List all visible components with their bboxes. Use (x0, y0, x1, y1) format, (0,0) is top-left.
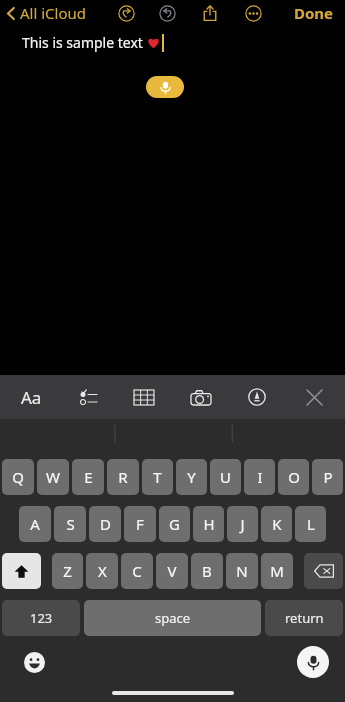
button[interactable]: Markup (236, 377, 278, 417)
staticText: J (240, 514, 245, 534)
button[interactable]: X (86, 553, 118, 589)
staticText: X (98, 561, 107, 581)
button[interactable]: All iCloud (4, 1, 89, 25)
button[interactable]: U (210, 459, 241, 495)
button[interactable]: M (261, 553, 293, 589)
button[interactable]: Table (123, 377, 165, 417)
staticText: S (66, 514, 75, 534)
button[interactable]: K (261, 506, 292, 542)
staticText: V (167, 561, 177, 581)
staticText: Z (63, 561, 72, 581)
button[interactable]: L (295, 506, 326, 542)
staticText: Q (12, 467, 24, 487)
staticText: M (270, 561, 284, 581)
button[interactable]: Hide keyboard (293, 377, 335, 417)
staticText: O (288, 467, 300, 487)
button[interactable]: W (37, 459, 69, 495)
button[interactable]: Shift (2, 553, 41, 589)
staticText: Done (294, 3, 334, 23)
staticText: 123 (30, 609, 53, 627)
button[interactable]: D (89, 506, 121, 542)
button[interactable]: Start dictation (146, 76, 184, 98)
button[interactable]: F (124, 506, 156, 542)
button[interactable]: R (107, 459, 139, 495)
staticText: I (257, 467, 263, 487)
staticText: return (285, 609, 324, 627)
button[interactable]: return (265, 600, 343, 636)
staticText: G (169, 514, 180, 534)
button[interactable]: More options (241, 1, 265, 25)
button[interactable]: B (191, 553, 223, 589)
button[interactable]: V (156, 553, 188, 589)
staticText: R (118, 467, 128, 487)
staticText: P (323, 467, 333, 487)
button[interactable]: H (193, 506, 224, 542)
button[interactable]: Checklist (67, 377, 109, 417)
staticText: Aa (21, 386, 42, 409)
staticText: Y (187, 467, 196, 487)
staticText: T (153, 467, 162, 487)
button[interactable]: Format (10, 377, 52, 417)
button[interactable]: S (54, 506, 86, 542)
button[interactable]: Camera (180, 377, 222, 417)
staticText: F (136, 514, 144, 534)
button[interactable]: A (19, 506, 51, 542)
button[interactable]: Emoji keyboard (20, 648, 48, 676)
staticText: D (100, 514, 111, 534)
button[interactable]: Done (289, 1, 339, 25)
button[interactable]: Undo (114, 1, 138, 25)
staticText: U (220, 467, 231, 487)
staticText: L (307, 514, 315, 534)
button[interactable]: P (312, 459, 343, 495)
staticText: space (155, 609, 191, 627)
button[interactable]: J (227, 506, 258, 542)
button[interactable]: space (84, 600, 261, 636)
button[interactable]: Y (176, 459, 207, 495)
staticText: N (236, 561, 248, 581)
staticText: All iCloud (20, 3, 87, 23)
staticText: H (203, 514, 215, 534)
button[interactable]: Q (2, 459, 34, 495)
button[interactable]: Redo (155, 1, 179, 25)
button[interactable]: Backspace (304, 553, 343, 589)
button[interactable]: Dictate (297, 646, 329, 678)
button[interactable]: I (244, 459, 275, 495)
staticText: This is sample text (22, 33, 147, 52)
button[interactable]: N (226, 553, 258, 589)
button[interactable]: C (121, 553, 153, 589)
staticText: E (84, 467, 93, 487)
button[interactable]: E (72, 459, 104, 495)
staticText: K (272, 514, 282, 534)
button[interactable]: Share (198, 1, 222, 25)
button[interactable]: T (142, 459, 173, 495)
button[interactable]: O (278, 459, 309, 495)
button[interactable]: Z (52, 553, 83, 589)
staticText: B (202, 561, 212, 581)
button[interactable]: G (159, 506, 190, 542)
staticText: W (46, 467, 60, 487)
staticText: C (132, 561, 142, 581)
button[interactable]: 123 (2, 600, 80, 636)
staticText: A (30, 514, 40, 534)
